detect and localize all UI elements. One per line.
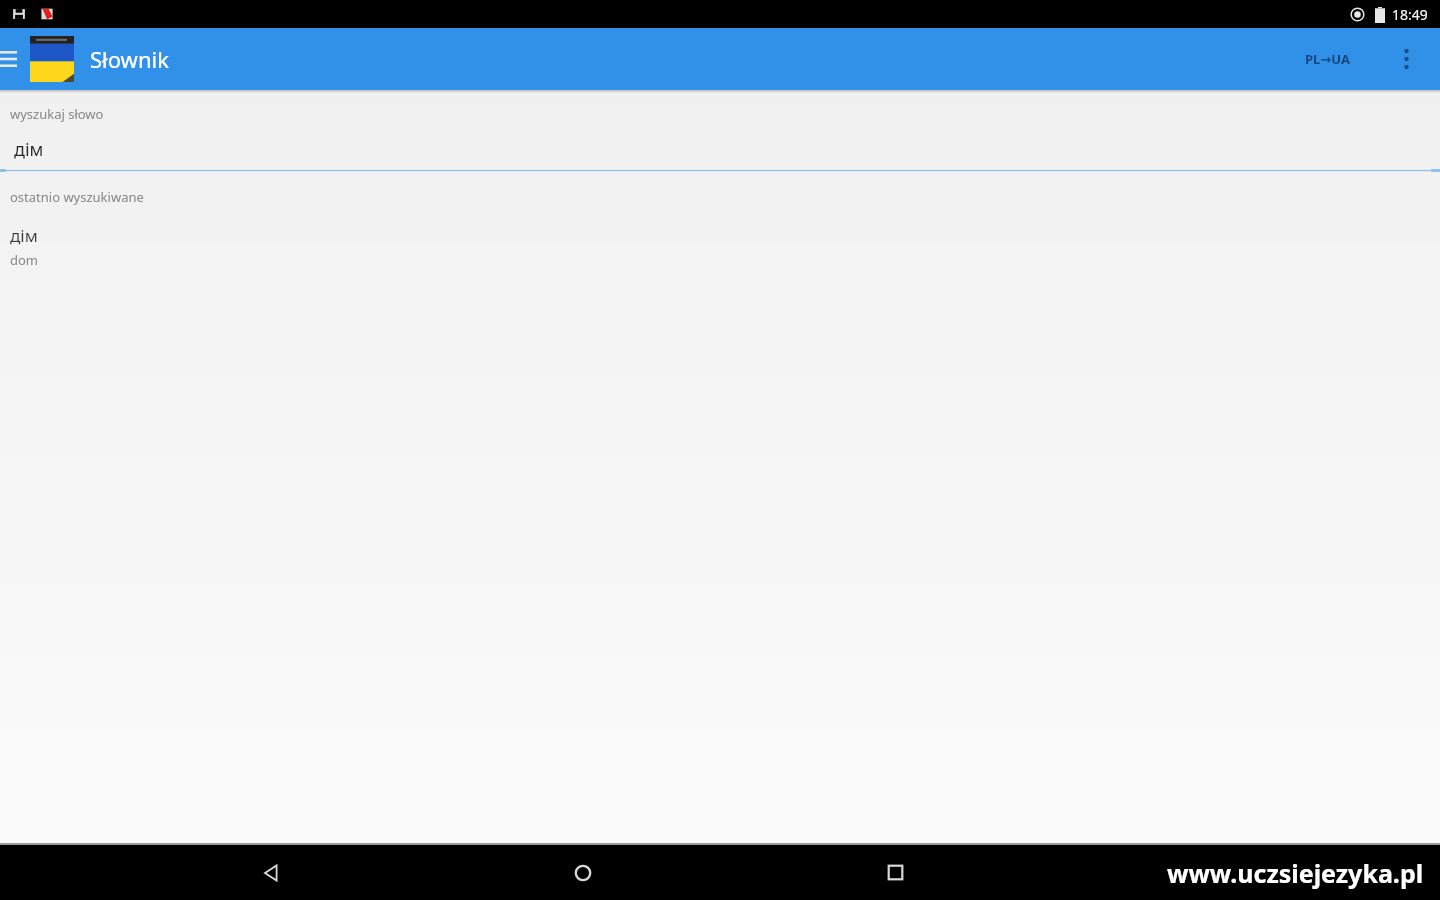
button[interactable]: Back <box>231 845 311 900</box>
staticText: 18:49 <box>1392 5 1428 24</box>
staticText: Słownik <box>90 44 169 74</box>
staticText: wyszukaj słowo <box>10 105 104 123</box>
staticText: дім <box>10 224 38 247</box>
button[interactable]: More options <box>1386 34 1426 84</box>
button[interactable]: PL→UA <box>1293 42 1362 76</box>
button[interactable]: дім <box>0 222 1440 277</box>
staticText: PL→UA <box>1305 50 1350 68</box>
button[interactable]: Home <box>543 845 623 900</box>
staticText: дім <box>14 137 44 162</box>
button[interactable]: Recent apps <box>855 845 935 900</box>
button[interactable]: дім <box>0 137 1440 172</box>
staticText: ostatnio wyszukiwane <box>10 188 144 206</box>
staticText: www.uczsiejezyka.pl <box>1167 856 1424 890</box>
staticText: dom <box>10 251 39 269</box>
button[interactable]: Open navigation menu <box>0 37 20 81</box>
